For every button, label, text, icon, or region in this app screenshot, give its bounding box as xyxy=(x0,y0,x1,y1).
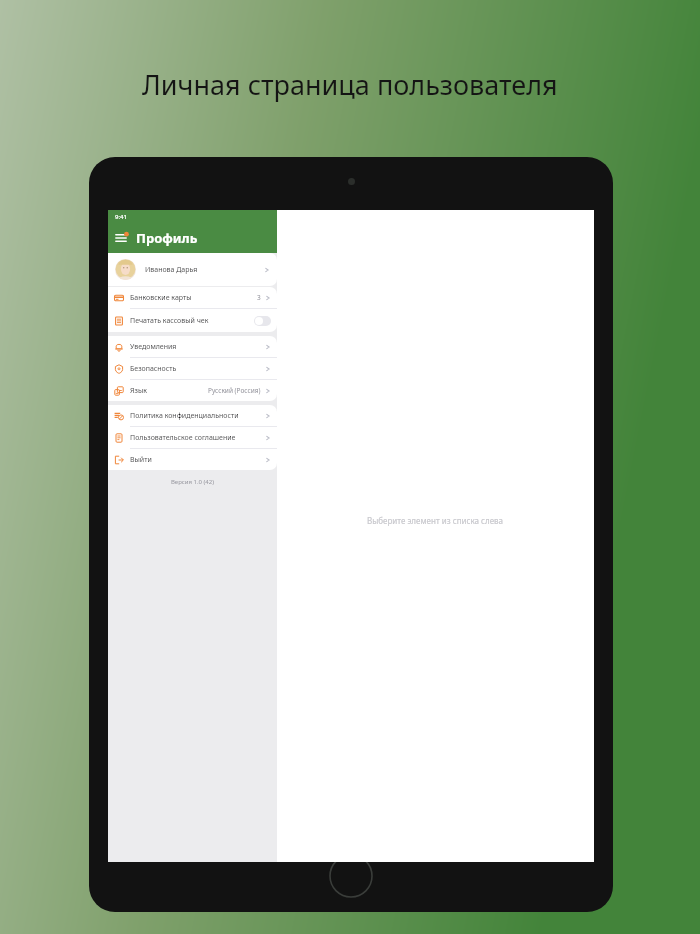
staticText: Иванова Дарья xyxy=(145,265,198,275)
staticText: Язык xyxy=(130,386,147,396)
staticText: Версия 1.0 (42) xyxy=(108,478,277,486)
staticText: Русский (Россия) xyxy=(208,386,261,395)
button[interactable]: Меню xyxy=(115,231,129,245)
button[interactable]: Пользовательское соглашение xyxy=(108,427,277,448)
staticText: Профиль xyxy=(136,229,198,247)
staticText: 3 xyxy=(257,293,261,302)
staticText: Выберите элемент из списка слева xyxy=(367,515,504,526)
button[interactable]: Выйти xyxy=(108,449,277,470)
button[interactable]: Печатать кассовый чек xyxy=(108,309,277,332)
staticText: Безопасность xyxy=(130,364,177,374)
staticText: Личная страница пользователя xyxy=(142,66,558,103)
button[interactable]: Язык xyxy=(108,380,277,401)
button[interactable]: Иванова Дарья xyxy=(108,253,277,286)
staticText: Уведомления xyxy=(130,342,177,352)
button[interactable]: Уведомления xyxy=(108,336,277,357)
staticText: Политика конфиденциальности xyxy=(130,411,239,421)
button[interactable]: Политика конфиденциальности xyxy=(108,405,277,426)
staticText: Банковские карты xyxy=(130,293,192,303)
staticText: Пользовательское соглашение xyxy=(130,433,236,443)
staticText: Выйти xyxy=(130,455,152,465)
button[interactable]: Безопасность xyxy=(108,358,277,379)
staticText: 9:41 xyxy=(115,213,127,221)
staticText: Печатать кассовый чек xyxy=(130,316,209,326)
button[interactable]: Банковские карты xyxy=(108,287,277,308)
